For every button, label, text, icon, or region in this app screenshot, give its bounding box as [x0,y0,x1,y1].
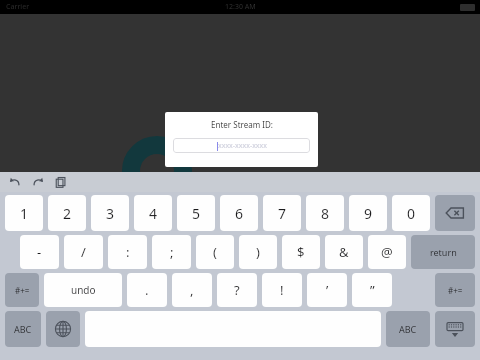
staticText: ; [170,243,174,261]
staticText: return [430,246,457,258]
staticText: ABC [14,323,32,335]
button[interactable]: @ [368,235,406,269]
button[interactable]: xxxx-xxxx-xxxx [173,138,310,153]
button[interactable]: 1 [5,195,43,231]
staticText: 5 [192,204,201,223]
button[interactable]: ; [152,235,191,269]
staticText: 2 [63,204,72,223]
button[interactable]: $ [282,235,320,269]
button[interactable]: Change keyboard [46,311,80,347]
button[interactable]: & [325,235,363,269]
button[interactable]: undo [44,273,122,307]
button[interactable]: Undo [8,175,22,189]
staticText: @ [381,243,393,261]
staticText: , [190,281,194,299]
staticText: 4 [149,204,158,223]
button[interactable]: ) [239,235,277,269]
button[interactable]: , [172,273,212,307]
staticText: $ [297,243,305,261]
staticText: ) [256,243,260,261]
button[interactable]: 6 [220,195,258,231]
staticText: ! [280,281,284,299]
button[interactable]: 9 [349,195,387,231]
staticText: xxxx-xxxx-xxxx [218,141,267,151]
staticText: 3 [106,204,115,223]
button[interactable]: ABC [5,311,41,347]
button[interactable]: return [411,235,475,269]
staticText: 8 [321,204,330,223]
button[interactable]: ’ [307,273,347,307]
button[interactable]: Redo [31,175,45,189]
staticText: / [81,243,86,261]
staticText: 6 [235,204,244,223]
staticText: 7 [278,204,287,223]
button[interactable]: : [108,235,147,269]
staticText: ’ [326,281,329,299]
staticText: Enter Stream ID: [211,119,273,130]
staticText: 9 [364,204,373,223]
staticText: ABC [399,323,417,335]
staticText: ? [234,281,240,299]
button[interactable]: - [20,235,59,269]
button[interactable]: ( [196,235,234,269]
staticText: #+= [448,285,463,296]
button[interactable]: ! [262,273,302,307]
button[interactable]: 4 [134,195,172,231]
staticText: 12:30 AM [225,2,256,12]
staticText: #+= [15,285,30,296]
staticText: undo [71,283,96,297]
button[interactable]: . [127,273,167,307]
staticText: - [37,243,42,261]
button[interactable]: ? [217,273,257,307]
staticText: 0 [407,204,416,223]
button[interactable]: / [64,235,103,269]
button[interactable]: 5 [177,195,215,231]
button[interactable]: #+= [435,273,475,307]
button[interactable]: ABC [386,311,430,347]
button[interactable]: Backspace [435,195,475,231]
button[interactable]: 2 [48,195,86,231]
button[interactable]: 3 [91,195,129,231]
staticText: ” [370,281,375,299]
button[interactable]: 0 [392,195,430,231]
button[interactable]: Hide keyboard [435,311,475,347]
staticText: 1 [20,204,29,223]
button[interactable]: 8 [306,195,344,231]
button[interactable]: 7 [263,195,301,231]
staticText: & [339,243,349,261]
staticText: ( [213,243,217,261]
staticText: . [145,281,149,299]
button[interactable]: ” [352,273,392,307]
staticText: Carrier [6,2,30,12]
staticText: : [126,243,130,261]
button[interactable]: Copy [54,175,68,189]
button[interactable]: #+= [5,273,39,307]
